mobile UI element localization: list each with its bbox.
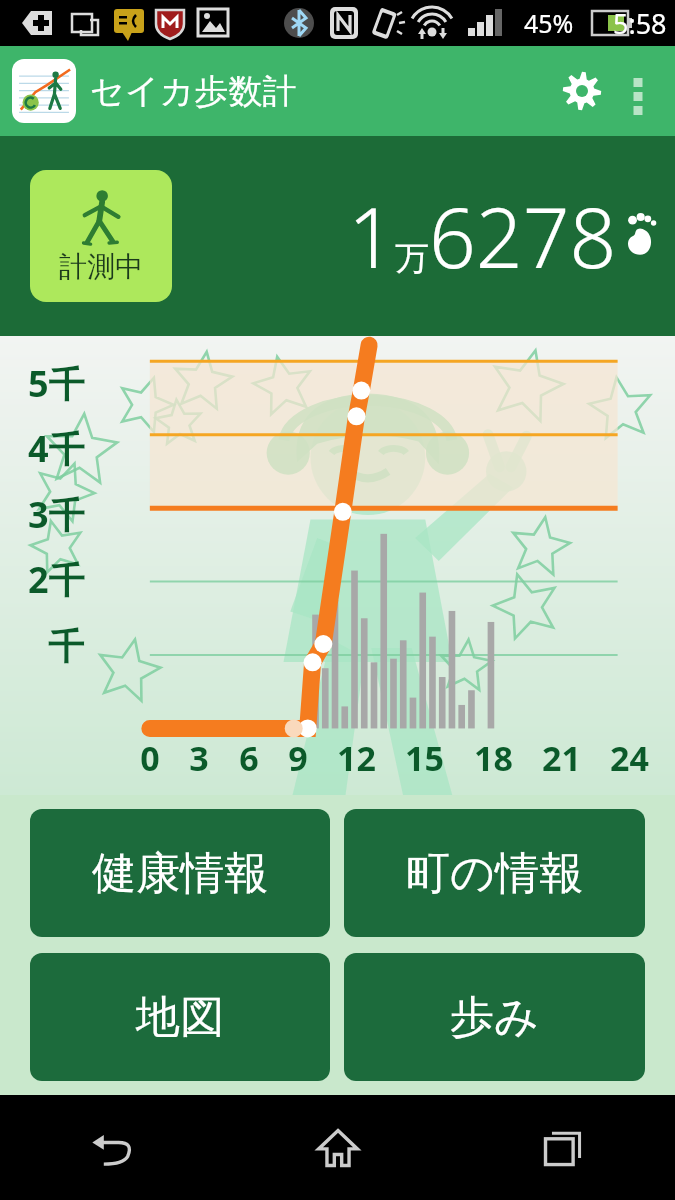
staticText: 12 <box>337 735 376 781</box>
staticText: 万 <box>395 237 429 280</box>
staticText: 0 <box>140 735 160 781</box>
staticText: セイカ歩数計 <box>90 70 297 113</box>
staticText: 4千 <box>28 424 85 473</box>
staticText: 町の情報 <box>406 846 584 901</box>
staticText: 21 <box>542 735 581 781</box>
staticText: 5:58 <box>613 5 667 42</box>
button[interactable]: Back <box>0 1095 225 1200</box>
staticText: 15 <box>405 735 444 781</box>
button[interactable]: Settings <box>551 60 613 122</box>
staticText: 6 <box>239 735 259 781</box>
staticText: 健康情報 <box>92 846 268 901</box>
button[interactable]: 健康情報 <box>30 809 330 937</box>
staticText: 計測中 <box>59 249 143 284</box>
button[interactable]: 計測中 <box>30 170 172 302</box>
button[interactable]: Recent apps <box>450 1095 675 1200</box>
staticText: 2千 <box>28 555 85 604</box>
staticText: 3 <box>189 735 209 781</box>
staticText: 3千 <box>28 490 85 539</box>
button[interactable]: 地図 <box>30 953 330 1081</box>
staticText: 千 <box>48 624 84 669</box>
staticText: 1 <box>348 180 395 292</box>
staticText: 地図 <box>136 990 224 1045</box>
staticText: 9 <box>288 735 308 781</box>
button[interactable]: More options <box>613 66 663 116</box>
staticText: 5千 <box>28 359 85 408</box>
button[interactable]: Home <box>225 1095 450 1200</box>
staticText: 45% <box>524 6 574 40</box>
button[interactable]: 歩み <box>344 953 645 1081</box>
button[interactable]: 町の情報 <box>344 809 645 937</box>
staticText: 24 <box>610 735 649 781</box>
staticText: 18 <box>474 735 513 781</box>
button[interactable]: App icon <box>12 59 76 123</box>
staticText: 6278 <box>429 180 617 292</box>
staticText: 歩み <box>450 990 540 1045</box>
